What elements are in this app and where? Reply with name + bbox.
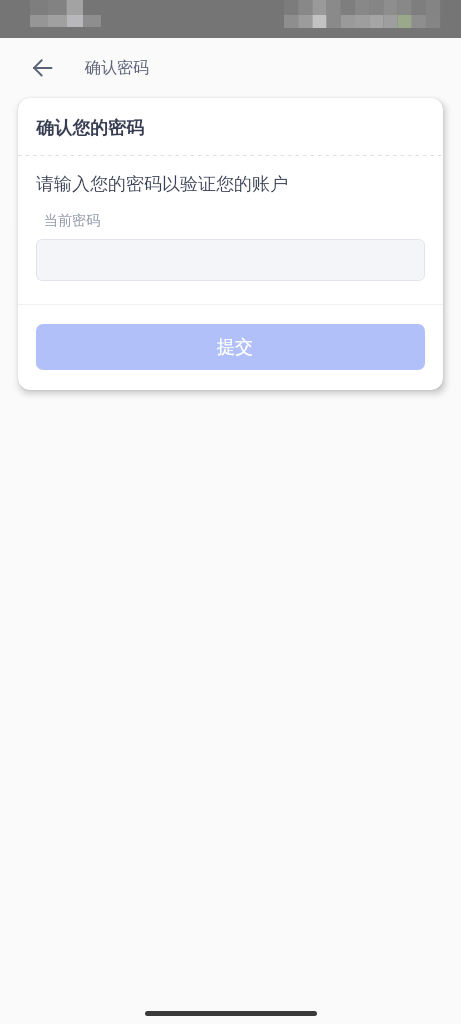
- staticText: 确认密码: [85, 58, 149, 78]
- button[interactable]: 提交: [36, 324, 425, 370]
- button[interactable]: 当前密码输入框: [36, 239, 425, 281]
- button[interactable]: Back: [18, 42, 66, 90]
- staticText: 确认您的密码: [36, 117, 144, 140]
- staticText: 请输入您的密码以验证您的账户: [36, 173, 288, 196]
- staticText: 提交: [217, 336, 253, 359]
- staticText: 当前密码: [44, 212, 100, 230]
